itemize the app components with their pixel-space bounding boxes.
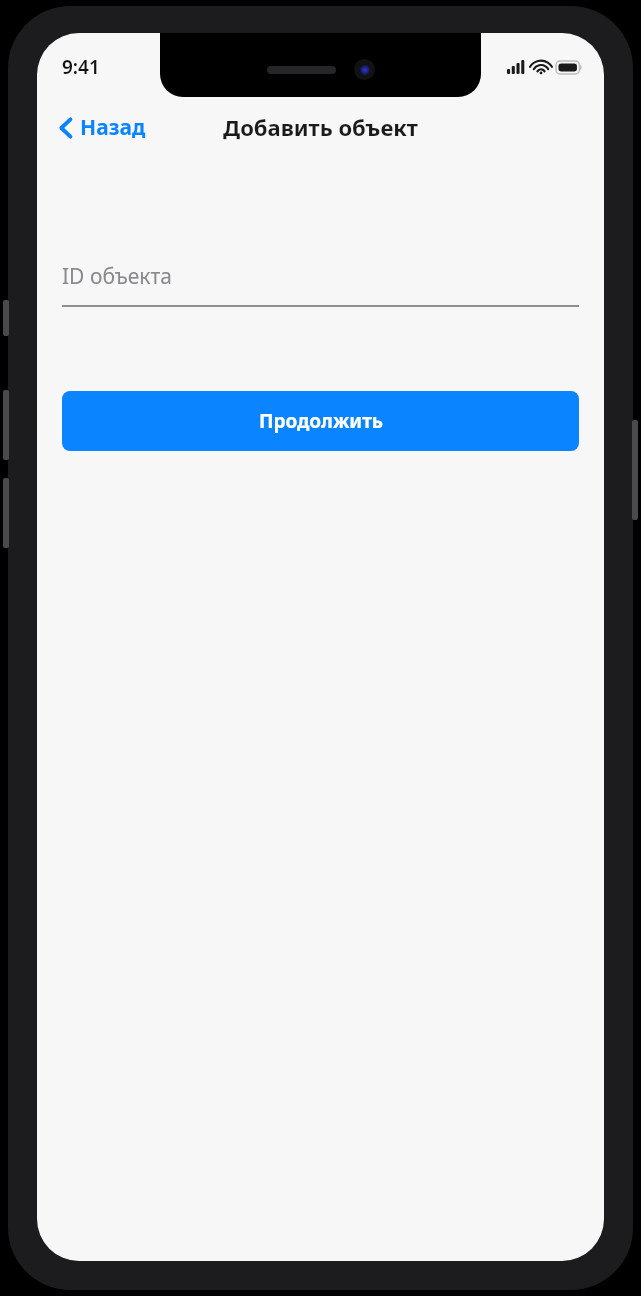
staticText: ID объекта [62, 262, 172, 291]
button[interactable]: Назад [37, 107, 158, 148]
button[interactable]: ID объекта [62, 262, 579, 307]
staticText: 9:41 [62, 54, 100, 80]
staticText: Продолжить [259, 408, 383, 434]
button[interactable]: Продолжить [62, 391, 579, 451]
staticText: Назад [80, 113, 146, 142]
staticText: Добавить объект [223, 112, 418, 142]
